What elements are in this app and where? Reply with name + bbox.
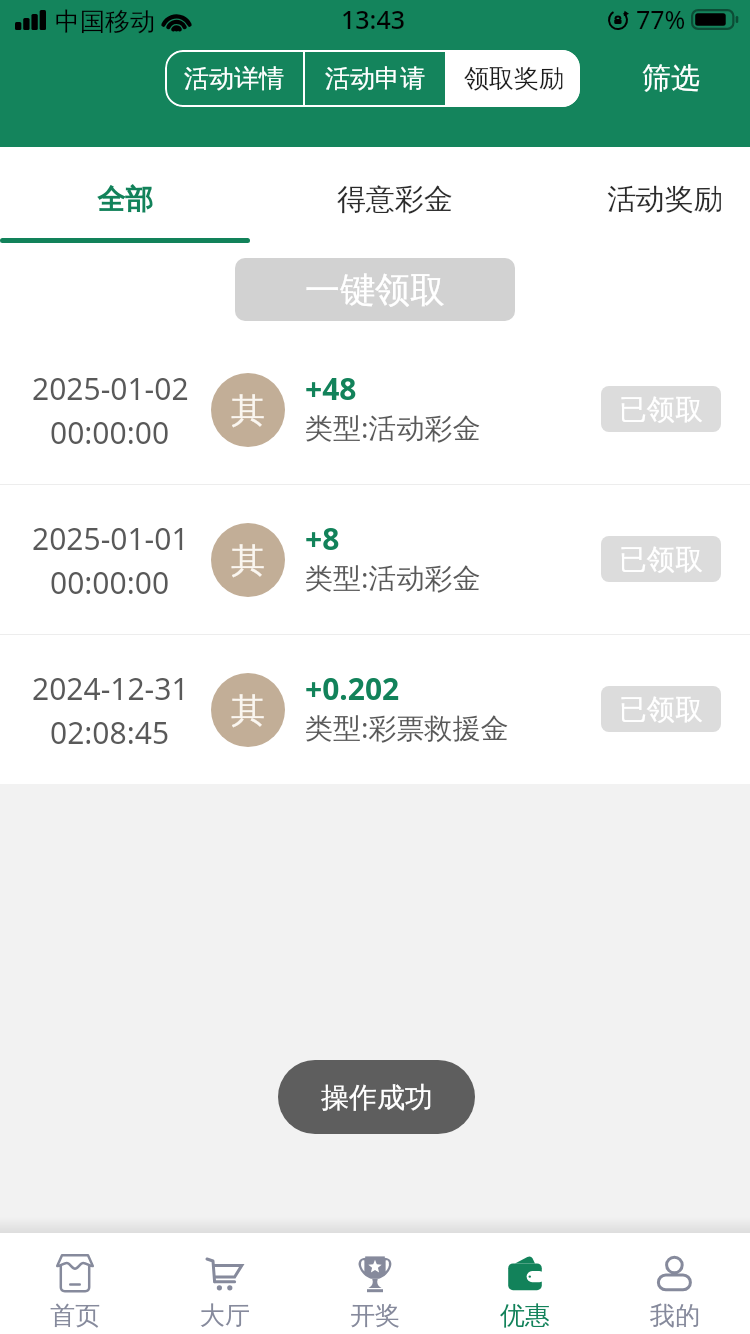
- button[interactable]: 2024-12-31: [0, 635, 750, 784]
- staticText: 活动奖励: [607, 181, 723, 218]
- staticText: 全部: [97, 182, 153, 217]
- staticText: 类型:活动彩金: [305, 558, 481, 596]
- button[interactable]: 2025-01-02: [0, 335, 750, 484]
- other: 优惠: [505, 1253, 545, 1293]
- staticText: 得意彩金: [337, 181, 453, 218]
- staticText: 其: [231, 689, 265, 732]
- staticText: 已领取: [619, 542, 703, 577]
- button[interactable]: 一键领取: [235, 258, 515, 321]
- button[interactable]: 优惠: [450, 1233, 600, 1334]
- button[interactable]: 已领取: [601, 536, 721, 582]
- button[interactable]: 活动奖励: [540, 147, 750, 252]
- button[interactable]: 我的: [600, 1233, 750, 1334]
- other: 开奖: [355, 1253, 395, 1293]
- button[interactable]: 已领取: [601, 686, 721, 732]
- staticText: 筛选: [642, 60, 700, 97]
- other: 首页: [55, 1253, 95, 1293]
- button[interactable]: 2025-01-01: [0, 485, 750, 634]
- button[interactable]: 活动申请: [305, 50, 445, 107]
- staticText: 大厅: [200, 1300, 250, 1331]
- staticText: 00:00:00: [50, 562, 170, 603]
- staticText: 首页: [50, 1300, 100, 1331]
- staticText: 其: [231, 389, 265, 432]
- other: 大厅: [205, 1253, 245, 1293]
- staticText: 类型:活动彩金: [305, 408, 481, 446]
- button[interactable]: 领取奖励: [447, 50, 580, 107]
- staticText: 13:43: [341, 2, 406, 36]
- button[interactable]: 大厅: [150, 1233, 300, 1334]
- staticText: 活动申请: [325, 63, 425, 94]
- button[interactable]: 开奖: [300, 1233, 450, 1334]
- staticText: 77%: [636, 2, 686, 36]
- staticText: 2025-01-02: [32, 368, 189, 409]
- staticText: 类型:彩票救援金: [305, 708, 509, 746]
- staticText: 操作成功: [321, 1080, 433, 1115]
- staticText: 已领取: [619, 692, 703, 727]
- staticText: 领取奖励: [464, 63, 564, 94]
- staticText: 一键领取: [305, 268, 445, 312]
- staticText: 2024-12-31: [32, 668, 189, 709]
- staticText: 2025-01-01: [32, 518, 189, 559]
- button[interactable]: 筛选: [642, 50, 700, 107]
- staticText: 其: [231, 539, 265, 582]
- button[interactable]: 全部: [0, 147, 250, 252]
- staticText: 02:08:45: [50, 712, 170, 753]
- staticText: 已领取: [619, 392, 703, 427]
- staticText: +0.202: [305, 668, 400, 709]
- button[interactable]: 已领取: [601, 386, 721, 432]
- staticText: 我的: [650, 1300, 700, 1331]
- button[interactable]: 活动详情: [165, 50, 303, 107]
- staticText: 开奖: [350, 1300, 400, 1331]
- staticText: +48: [305, 368, 357, 409]
- staticText: 00:00:00: [50, 412, 170, 453]
- button[interactable]: 首页: [0, 1233, 150, 1334]
- other: 我的: [655, 1253, 695, 1293]
- staticText: 活动详情: [184, 63, 284, 94]
- staticText: 优惠: [500, 1300, 550, 1331]
- staticText: +8: [305, 518, 340, 559]
- staticText: 中国移动: [55, 6, 155, 37]
- button[interactable]: 得意彩金: [270, 147, 520, 252]
